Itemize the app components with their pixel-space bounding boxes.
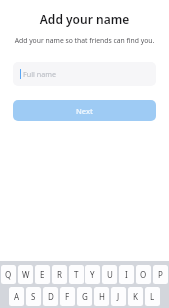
button[interactable]: F bbox=[60, 287, 75, 306]
staticText: D bbox=[48, 291, 54, 302]
button[interactable]: W bbox=[18, 265, 33, 284]
staticText: A bbox=[14, 291, 20, 302]
staticText: P bbox=[158, 269, 163, 280]
button[interactable]: U bbox=[102, 265, 117, 284]
staticText: E bbox=[40, 269, 45, 280]
staticText: H bbox=[99, 291, 105, 302]
staticText: T bbox=[74, 269, 79, 280]
staticText: W bbox=[22, 269, 30, 280]
staticText: O bbox=[140, 269, 147, 280]
staticText: U bbox=[107, 269, 113, 280]
staticText: Q bbox=[5, 269, 12, 280]
button[interactable]: Y bbox=[85, 265, 100, 284]
button[interactable]: K bbox=[128, 287, 143, 306]
staticText: Add your name so that friends can find y… bbox=[0, 36, 169, 45]
staticText: Next bbox=[76, 106, 93, 116]
button[interactable]: D bbox=[43, 287, 58, 306]
button[interactable]: A bbox=[9, 287, 24, 306]
button[interactable]: G bbox=[77, 287, 92, 306]
button[interactable]: R bbox=[52, 265, 67, 284]
staticText: L bbox=[150, 291, 155, 302]
button[interactable]: O bbox=[136, 265, 151, 284]
button[interactable]: E bbox=[35, 265, 50, 284]
staticText: Full name bbox=[23, 69, 56, 79]
staticText: Add your name bbox=[0, 11, 169, 27]
button[interactable]: Full name text field bbox=[13, 62, 156, 86]
button[interactable]: H bbox=[94, 287, 109, 306]
button[interactable]: J bbox=[111, 287, 126, 306]
button[interactable]: T bbox=[69, 265, 84, 284]
staticText: Y bbox=[90, 269, 95, 280]
staticText: J bbox=[117, 291, 120, 302]
staticText: F bbox=[65, 291, 70, 302]
button[interactable]: I bbox=[119, 265, 134, 284]
button[interactable]: P bbox=[153, 265, 168, 284]
staticText: K bbox=[133, 291, 138, 302]
button[interactable]: L bbox=[145, 287, 160, 306]
button[interactable]: S bbox=[26, 287, 41, 306]
staticText: I bbox=[125, 269, 128, 280]
staticText: S bbox=[31, 291, 36, 302]
button[interactable]: Next bbox=[13, 100, 156, 121]
staticText: G bbox=[82, 291, 88, 302]
staticText: R bbox=[57, 269, 62, 280]
button[interactable]: Q bbox=[1, 265, 16, 284]
